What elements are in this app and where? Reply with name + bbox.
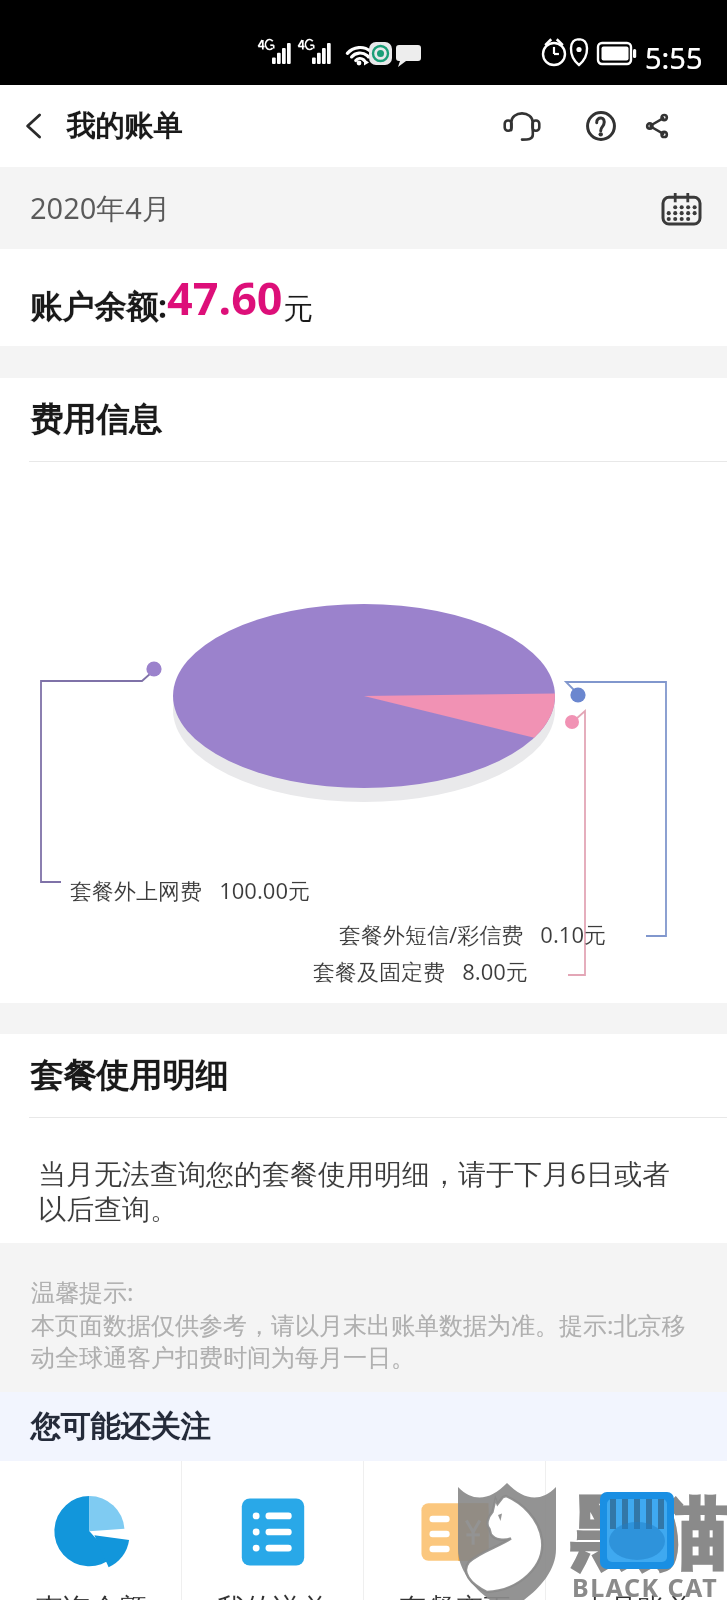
staticText: 我的详单	[217, 1591, 329, 1600]
button[interactable]: 查询余额	[0, 1461, 181, 1600]
staticText: 本月账单	[581, 1591, 693, 1600]
button[interactable]: 套餐变更	[364, 1461, 545, 1600]
staticText: 套餐外短信/彩信费 0.10元	[339, 919, 606, 949]
button[interactable]: Back	[0, 85, 66, 167]
staticText: 本页面数据仅供参考，请以月末出账单数据为准。提示:北京移动全球通客户扣费时间为每…	[31, 1308, 697, 1373]
staticText: 5:55	[645, 38, 703, 77]
staticText: 2020年4月	[30, 188, 171, 228]
button[interactable]: Choose month	[654, 181, 708, 235]
staticText: 费用信息	[30, 399, 162, 441]
button[interactable]: Help	[569, 95, 633, 157]
staticText: 黑猫	[570, 1485, 727, 1585]
staticText: 套餐外上网费 100.00元	[70, 875, 310, 905]
staticText: 套餐及固定费 8.00元	[313, 956, 528, 986]
staticText: 温馨提示:	[31, 1275, 134, 1308]
button[interactable]: Share	[627, 95, 687, 157]
staticText: BLACK CAT	[572, 1570, 719, 1600]
button[interactable]: 本月账单	[546, 1461, 727, 1600]
button[interactable]: 我的详单	[182, 1461, 363, 1600]
staticText: 我的账单	[66, 108, 182, 145]
staticText: 47.60	[167, 267, 283, 328]
staticText: 查询余额	[35, 1591, 147, 1600]
staticText: 您可能还关注	[30, 1408, 210, 1446]
staticText: 账户余额:	[30, 284, 167, 328]
button[interactable]: Customer service	[489, 95, 555, 157]
staticText: 当月无法查询您的套餐使用明细，请于下月6日或者以后查询。	[38, 1154, 688, 1227]
staticText: 元	[283, 290, 313, 328]
staticText: 套餐使用明细	[30, 1055, 228, 1097]
button[interactable]: 2020年4月	[0, 167, 727, 249]
staticText: 套餐变更	[399, 1591, 511, 1600]
